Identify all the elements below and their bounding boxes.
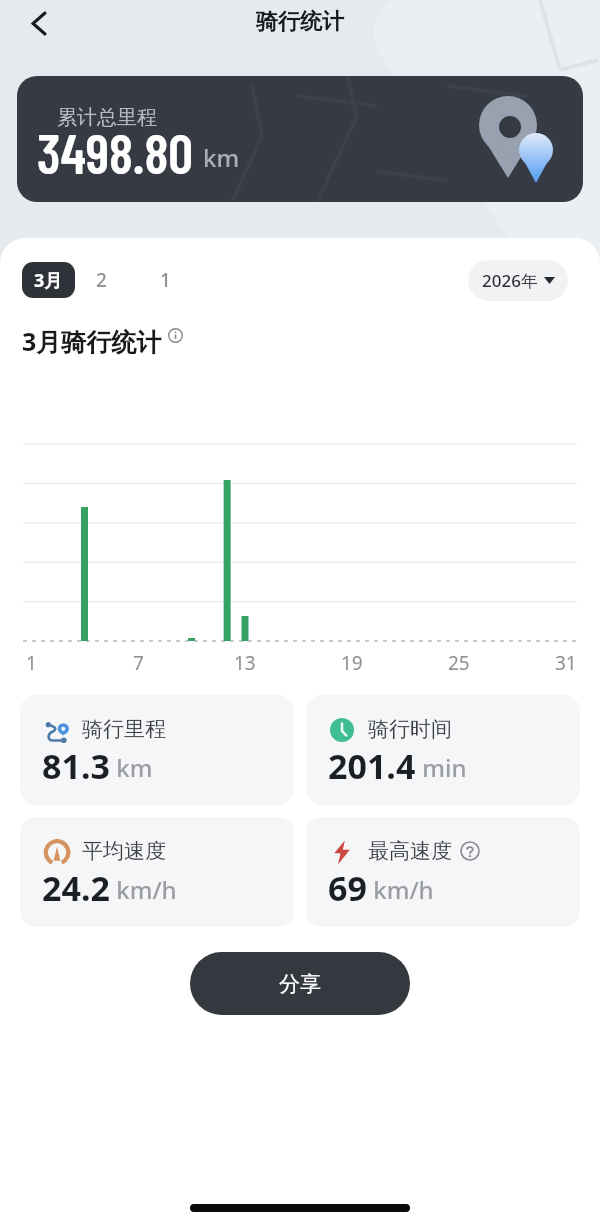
button[interactable]: 骑行里程 xyxy=(20,695,294,805)
button[interactable]: 3月 xyxy=(22,262,75,298)
button[interactable]: 分享 xyxy=(190,952,410,1015)
button[interactable] xyxy=(24,8,56,40)
staticText: km/h xyxy=(367,873,434,906)
staticText: km/h xyxy=(110,873,177,906)
button[interactable]: 最高速度 xyxy=(306,817,580,927)
staticText: 19 xyxy=(341,650,363,676)
staticText: 分享 xyxy=(279,971,321,997)
staticText: 1 xyxy=(26,650,37,676)
staticText: km xyxy=(110,751,153,784)
staticText: 201.4 xyxy=(328,743,416,789)
staticText: 累计总里程 xyxy=(57,105,157,130)
staticText: 24.2 xyxy=(42,865,110,911)
staticText: 3月 xyxy=(34,268,63,293)
staticText: 3月骑行统计 xyxy=(22,324,162,358)
staticText: 7 xyxy=(133,650,144,676)
staticText: 1 xyxy=(160,267,171,293)
staticText: km xyxy=(203,141,240,174)
staticText: 25 xyxy=(448,650,470,676)
staticText: 31 xyxy=(555,650,577,676)
button[interactable]: 2026年 xyxy=(468,260,568,301)
staticText: 13 xyxy=(234,650,256,676)
staticText: 平均速度 xyxy=(82,838,166,864)
button[interactable]: 骑行时间 xyxy=(306,695,580,805)
staticText: 2 xyxy=(96,267,107,293)
staticText: 2026年 xyxy=(482,269,538,292)
button[interactable]: 累计总里程 xyxy=(17,76,583,202)
staticText: 骑行里程 xyxy=(82,716,166,742)
staticText: 3498.80 xyxy=(37,119,194,185)
staticText: min xyxy=(416,751,467,784)
button[interactable]: 平均速度 xyxy=(20,817,294,927)
staticText: 最高速度 xyxy=(368,838,452,864)
staticText: 骑行统计 xyxy=(0,8,600,36)
button[interactable]: 2 xyxy=(85,262,117,298)
staticText: 81.3 xyxy=(42,743,110,789)
button[interactable]: 1 xyxy=(149,262,181,298)
staticText: 69 xyxy=(328,865,367,911)
staticText: 骑行时间 xyxy=(368,716,452,742)
